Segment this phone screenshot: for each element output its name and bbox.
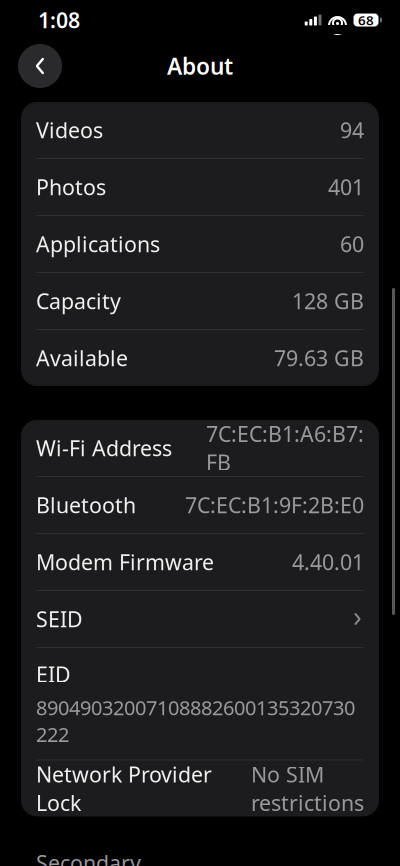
button[interactable]: Network Provider Lock [21, 760, 379, 816]
button[interactable]: Wi-Fi Address [21, 420, 379, 476]
staticText: 89049032007108882600135320730222 [36, 694, 355, 747]
button[interactable]: Bluetooth [21, 477, 379, 533]
button[interactable]: Applications [21, 216, 379, 272]
staticText: Network Provider Lock [36, 760, 212, 817]
staticText: SEID [36, 605, 83, 633]
staticText: EID [36, 660, 71, 688]
staticText: 60 [340, 230, 364, 258]
button[interactable]: Modem Firmware [21, 534, 379, 590]
button[interactable]: SEID [21, 591, 379, 647]
staticText: 7C:EC:B1:A6:B7:FB [206, 420, 364, 476]
staticText: Wi-Fi Address [36, 434, 172, 462]
staticText: Capacity [36, 287, 121, 315]
staticText: 128 GB [292, 287, 364, 315]
staticText: 401 [328, 173, 364, 201]
button[interactable]: Videos [21, 102, 379, 158]
staticText: 7C:EC:B1:9F:2B:E0 [185, 491, 364, 519]
button[interactable]: Back [18, 44, 62, 88]
staticText: About [167, 51, 233, 81]
staticText: 1:08 [38, 6, 80, 34]
staticText: 79.63 GB [274, 344, 364, 372]
staticText: Applications [36, 230, 160, 258]
staticText: Available [36, 344, 128, 372]
staticText: 94 [340, 116, 364, 144]
staticText: Secondary [36, 848, 141, 866]
staticText: 4.40.01 [292, 548, 364, 576]
staticText: Photos [36, 173, 106, 201]
staticText: Modem Firmware [36, 548, 214, 576]
staticText: 68 [358, 11, 374, 29]
button[interactable]: Photos [21, 159, 379, 215]
button[interactable]: Capacity [21, 273, 379, 329]
button[interactable]: Available [21, 330, 379, 386]
staticText: Videos [36, 116, 103, 144]
staticText: No SIM restrictions [251, 760, 364, 817]
button[interactable]: EID [21, 648, 379, 759]
staticText: Bluetooth [36, 491, 136, 519]
